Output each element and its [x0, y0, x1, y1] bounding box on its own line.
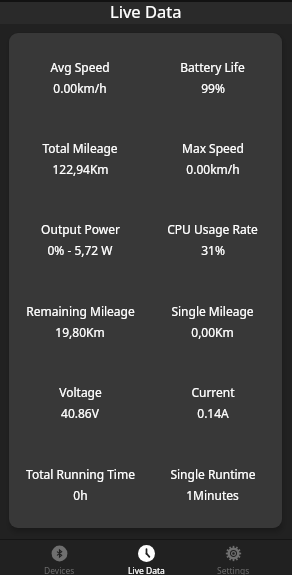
other: Devices: [51, 545, 68, 562]
staticText: Single Mileage: [171, 303, 254, 319]
staticText: Voltage: [59, 384, 102, 400]
staticText: Devices: [44, 565, 75, 575]
staticText: 31%: [201, 242, 225, 258]
button[interactable]: CPU Usage Rate: [146, 221, 279, 258]
staticText: Total Mileage: [42, 140, 118, 156]
staticText: Live Data: [128, 565, 165, 575]
staticText: Settings: [217, 565, 250, 575]
staticText: 0.14A: [197, 405, 229, 421]
staticText: 19,80Km: [55, 324, 105, 340]
button[interactable]: Total Mileage: [14, 140, 146, 177]
staticText: 99%: [201, 80, 225, 96]
button[interactable]: Remaining Mileage: [14, 303, 146, 340]
button[interactable]: Max Speed: [146, 140, 279, 177]
staticText: Output Power: [41, 221, 120, 237]
staticText: Avg Speed: [50, 59, 110, 75]
button[interactable]: Live Data: [103, 545, 190, 575]
staticText: 122,94Km: [52, 161, 109, 177]
button[interactable]: Current: [146, 384, 279, 421]
staticText: 40.86V: [61, 405, 99, 421]
staticText: Total Running Time: [26, 466, 135, 482]
button[interactable]: Output Power: [14, 221, 146, 258]
staticText: Live Data: [110, 0, 182, 22]
staticText: 0.00km/h: [186, 161, 240, 177]
staticText: Remaining Mileage: [26, 303, 135, 319]
staticText: CPU Usage Rate: [167, 221, 258, 237]
button[interactable]: Voltage: [14, 384, 146, 421]
button[interactable]: Battery Life: [146, 59, 279, 96]
staticText: Battery Life: [180, 59, 245, 75]
button[interactable]: Single Mileage: [146, 303, 279, 340]
staticText: 1Minutes: [186, 487, 239, 503]
staticText: Single Runtime: [170, 466, 256, 482]
button[interactable]: Avg Speed: [14, 59, 146, 96]
staticText: 0% - 5,72 W: [47, 242, 113, 258]
button[interactable]: Total Running Time: [14, 466, 146, 503]
staticText: Max Speed: [182, 140, 244, 156]
staticText: Current: [191, 384, 235, 400]
other: Live Data: [138, 545, 155, 562]
staticText: 0.00km/h: [53, 80, 107, 96]
other: Settings: [225, 545, 242, 562]
staticText: 0,00Km: [191, 324, 234, 340]
button[interactable]: Single Runtime: [146, 466, 279, 503]
staticText: 0h: [73, 487, 88, 503]
button[interactable]: Devices: [15, 545, 103, 575]
button[interactable]: Settings: [190, 545, 277, 575]
